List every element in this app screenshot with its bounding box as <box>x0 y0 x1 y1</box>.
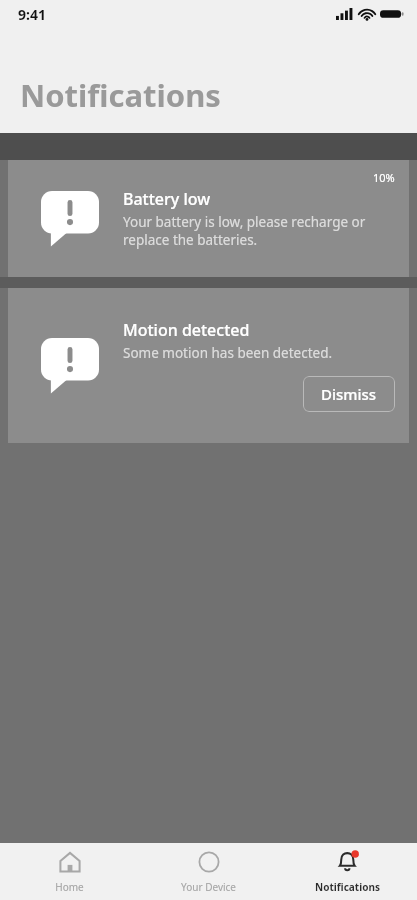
other: Notifications <box>336 850 360 874</box>
staticText: Home <box>55 880 84 894</box>
button[interactable]: Dismiss <box>303 376 395 412</box>
staticText: Notifications <box>315 880 380 894</box>
other: Your Device <box>197 850 221 874</box>
button[interactable]: Your Device <box>139 843 278 900</box>
staticText: Battery low <box>123 188 211 210</box>
staticText: Your battery is low, please recharge or … <box>123 213 395 249</box>
button[interactable]: Home <box>0 843 139 900</box>
staticText: Motion detected <box>123 319 250 341</box>
button[interactable]: Notifications <box>278 843 417 900</box>
button[interactable]: 10% <box>8 160 409 277</box>
staticText: 10% <box>373 170 395 185</box>
other: Home <box>58 850 82 874</box>
staticText: Dismiss <box>321 384 377 404</box>
staticText: Notifications <box>20 74 221 116</box>
button[interactable]: Motion detected <box>8 288 409 443</box>
staticText: 9:41 <box>18 5 46 24</box>
staticText: Your Device <box>181 880 236 894</box>
staticText: Some motion has been detected. <box>123 344 333 362</box>
